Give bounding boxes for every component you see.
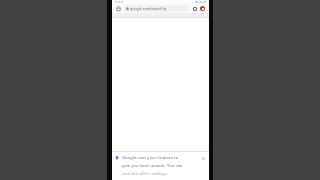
button[interactable]: google.com/search?q [124,5,189,12]
staticText: google.com/search?q [130,6,167,11]
button[interactable]: Home [115,5,122,12]
button[interactable]: Switch tabs [191,5,198,12]
staticText: Google uses your location to [122,155,179,161]
button[interactable]: Dismiss [200,155,206,161]
button[interactable]: Account [199,5,206,12]
staticText: give you local content. You can [122,163,183,169]
staticText: turn this off in settings. [122,171,168,177]
